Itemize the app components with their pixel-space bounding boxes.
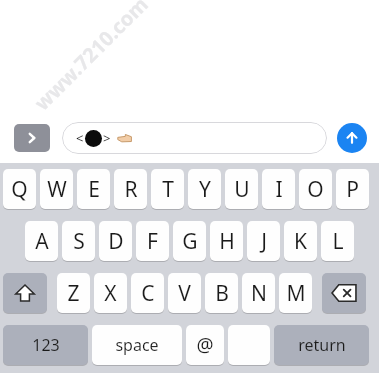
button[interactable]: More options	[14, 124, 50, 152]
staticText: K	[294, 227, 307, 256]
button[interactable]: Blank key	[228, 325, 270, 365]
button[interactable]: Backspace	[322, 273, 366, 313]
staticText: return	[298, 334, 346, 356]
staticText: >	[103, 129, 111, 147]
staticText: @	[196, 332, 214, 358]
staticText: X	[104, 279, 117, 308]
button[interactable]: D	[99, 221, 132, 261]
button[interactable]: F	[136, 221, 169, 261]
button[interactable]: Q	[3, 169, 36, 209]
staticText: www.7210.com	[28, 0, 154, 116]
staticText: J	[261, 227, 267, 256]
staticText: I	[275, 175, 283, 204]
button[interactable]: W	[40, 169, 73, 209]
staticText: T	[162, 175, 174, 204]
staticText: 123	[32, 334, 60, 356]
button[interactable]: return	[274, 325, 369, 365]
staticText: E	[88, 175, 100, 204]
staticText: Y	[199, 175, 211, 204]
button[interactable]: Shift	[3, 273, 47, 313]
button[interactable]: Z	[57, 273, 90, 313]
button[interactable]: M	[279, 273, 312, 313]
button[interactable]: B	[205, 273, 238, 313]
button[interactable]: V	[168, 273, 201, 313]
button[interactable]: <	[62, 122, 327, 154]
staticText: Q	[11, 175, 28, 204]
button[interactable]: space	[92, 325, 182, 365]
staticText: C	[141, 279, 155, 308]
button[interactable]: R	[114, 169, 147, 209]
button[interactable]: Y	[188, 169, 221, 209]
staticText: D	[108, 227, 124, 256]
staticText: G	[182, 227, 198, 256]
staticText: L	[332, 227, 344, 256]
staticText: A	[35, 227, 49, 256]
button[interactable]: C	[131, 273, 164, 313]
staticText: M	[286, 279, 306, 308]
staticText: R	[124, 175, 138, 204]
staticText: V	[178, 279, 191, 308]
button[interactable]: I	[262, 169, 295, 209]
button[interactable]: S	[62, 221, 95, 261]
staticText: Z	[67, 279, 80, 308]
staticText: P	[346, 175, 359, 204]
staticText: O	[307, 175, 324, 204]
button[interactable]: N	[242, 273, 275, 313]
staticText: B	[215, 279, 229, 308]
button[interactable]: E	[77, 169, 110, 209]
staticText: H	[219, 227, 235, 256]
button[interactable]: G	[173, 221, 206, 261]
button[interactable]: H	[210, 221, 243, 261]
button[interactable]: Send	[337, 123, 367, 153]
staticText: space	[115, 334, 159, 356]
button[interactable]: J	[247, 221, 280, 261]
button[interactable]: A	[25, 221, 58, 261]
staticText: <	[76, 129, 84, 147]
button[interactable]: O	[299, 169, 332, 209]
button[interactable]: @	[186, 325, 224, 365]
button[interactable]: U	[225, 169, 258, 209]
staticText: F	[147, 227, 158, 256]
staticText: U	[234, 175, 250, 204]
button[interactable]: K	[284, 221, 317, 261]
button[interactable]: T	[151, 169, 184, 209]
staticText: S	[73, 227, 85, 256]
button[interactable]: P	[336, 169, 369, 209]
button[interactable]: 123	[3, 325, 88, 365]
staticText: W	[47, 175, 67, 204]
button[interactable]: L	[321, 221, 354, 261]
staticText: N	[251, 279, 267, 308]
button[interactable]: X	[94, 273, 127, 313]
